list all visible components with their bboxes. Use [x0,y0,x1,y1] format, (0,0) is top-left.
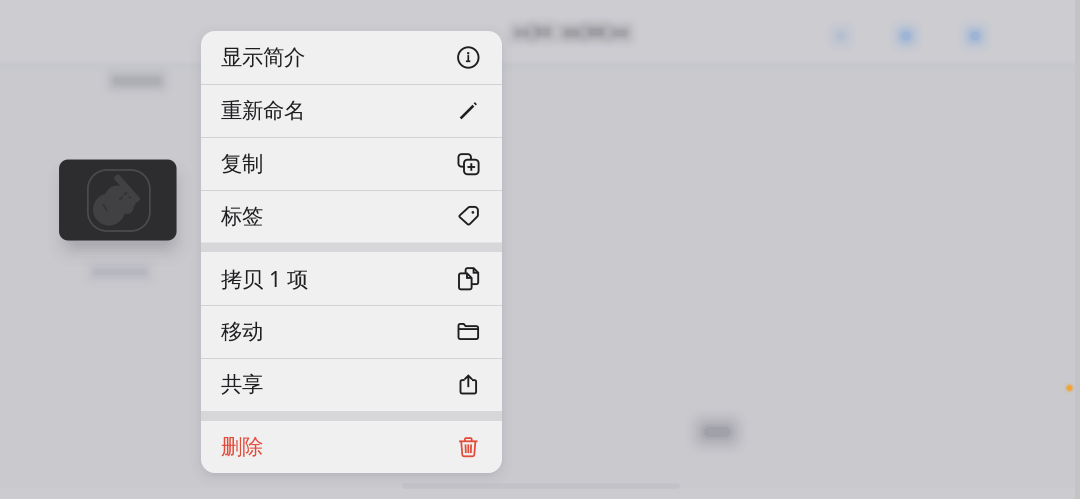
staticText: 重新命名 [221,98,305,124]
staticText: 共享 [221,371,263,398]
staticText: 拷贝 1 项 [221,265,308,293]
staticText: 移动 [221,319,263,345]
button[interactable]: 删除 [201,421,502,473]
button[interactable]: 标签 [201,190,502,242]
button[interactable]: 拷贝 1 项 [201,252,502,305]
staticText: 显示简介 [221,44,305,71]
staticText: 删除 [221,434,263,460]
staticText: 复制 [221,151,263,177]
button[interactable]: 显示简介 [201,31,502,84]
button[interactable]: 重新命名 [201,84,502,137]
button[interactable]: 复制 [201,137,502,190]
staticText: 标签 [221,203,263,230]
button[interactable]: 共享 [201,358,502,411]
button[interactable]: 移动 [201,305,502,358]
